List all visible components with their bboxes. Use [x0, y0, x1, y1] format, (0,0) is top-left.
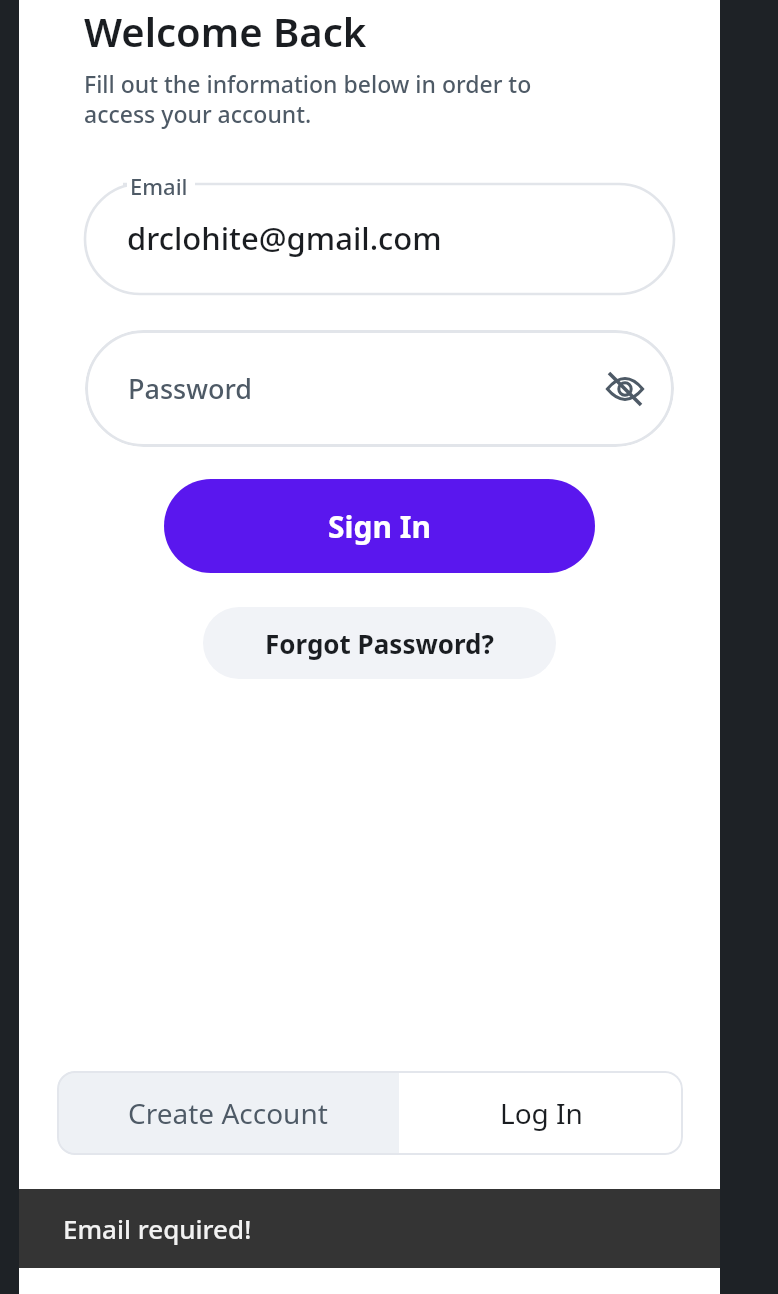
staticText: Password: [128, 370, 253, 407]
staticText: Log In: [500, 1094, 583, 1132]
button[interactable]: Sign In: [164, 479, 595, 573]
button[interactable]: Create Account: [57, 1071, 399, 1155]
staticText: Create Account: [128, 1094, 328, 1132]
staticText: Welcome Back: [84, 4, 367, 58]
button[interactable]: Log In: [399, 1071, 683, 1155]
button[interactable]: Show password: [602, 366, 648, 412]
button[interactable]: Password: [85, 330, 674, 447]
staticText: Email: [130, 171, 188, 201]
staticText: drclohite@gmail.com: [127, 217, 442, 259]
staticText: Email required!: [63, 1211, 252, 1246]
staticText: Fill out the information below in order …: [84, 68, 532, 130]
staticText: Sign In: [328, 506, 431, 547]
button[interactable]: Forgot Password?: [203, 607, 556, 679]
staticText: Forgot Password?: [265, 626, 494, 661]
button[interactable]: Email: [85, 172, 674, 294]
